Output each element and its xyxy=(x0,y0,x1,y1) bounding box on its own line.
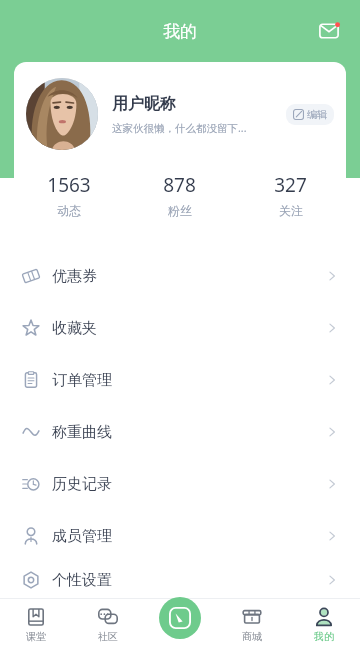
button[interactable]: 历史记录 xyxy=(0,458,360,510)
staticText: 历史记录 xyxy=(52,475,112,494)
staticText: 编辑 xyxy=(307,108,327,121)
staticText: 成员管理 xyxy=(52,527,112,546)
staticText: 用户昵称 xyxy=(112,94,176,114)
staticText: 收藏夹 xyxy=(52,319,97,338)
staticText: 1563 xyxy=(47,172,91,198)
button[interactable]: 商城 xyxy=(216,599,288,650)
button[interactable]: Weigh xyxy=(159,597,201,639)
staticText: 优惠券 xyxy=(52,267,97,286)
button[interactable]: 课堂 xyxy=(0,599,72,650)
button[interactable]: 优惠券 xyxy=(0,250,360,302)
staticText: 个性设置 xyxy=(52,571,112,590)
staticText: 商城 xyxy=(242,630,262,643)
staticText: 订单管理 xyxy=(52,371,112,390)
staticText: 我的 xyxy=(163,21,197,42)
button[interactable]: 称重曲线 xyxy=(0,406,360,458)
staticText: 称重曲线 xyxy=(52,423,112,442)
staticText: 动态 xyxy=(57,203,81,218)
staticText: 课堂 xyxy=(26,630,46,643)
button[interactable]: Avatar xyxy=(26,78,98,150)
button[interactable]: 收藏夹 xyxy=(0,302,360,354)
button[interactable]: 878 xyxy=(124,168,235,222)
staticText: 关注 xyxy=(279,203,303,218)
button[interactable]: 编辑 xyxy=(286,104,334,125)
button[interactable]: Messages xyxy=(312,14,346,48)
staticText: 粉丝 xyxy=(168,203,192,218)
staticText: 327 xyxy=(274,172,307,198)
button[interactable]: 我的 xyxy=(288,599,360,650)
button[interactable]: 订单管理 xyxy=(0,354,360,406)
button[interactable]: 个性设置 xyxy=(0,562,360,598)
staticText: 878 xyxy=(163,172,196,198)
staticText: 这家伙很懒，什么都没留下... xyxy=(112,121,247,135)
staticText: 我的 xyxy=(314,630,334,643)
button[interactable]: 1563 xyxy=(14,168,124,222)
button[interactable]: 成员管理 xyxy=(0,510,360,562)
button[interactable]: 327 xyxy=(235,168,346,222)
button[interactable]: 社区 xyxy=(72,599,144,650)
staticText: 社区 xyxy=(98,630,118,643)
